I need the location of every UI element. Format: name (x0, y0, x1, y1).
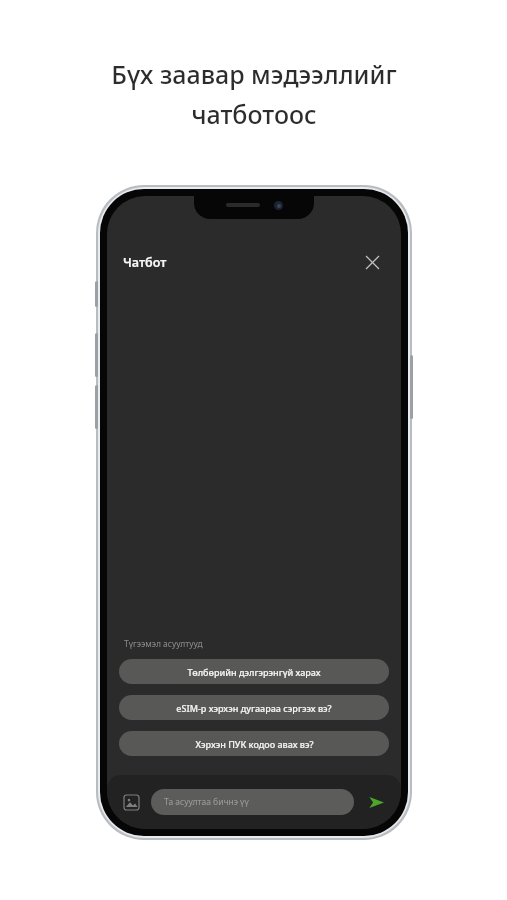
staticText: Төлбөрийн дэлгэрэнгүй харах (187, 666, 321, 678)
staticText: Та асуултаа бичнэ үү (164, 796, 249, 808)
button[interactable]: Send (363, 789, 389, 815)
button[interactable]: Attach image (119, 790, 143, 814)
button[interactable]: Хэрхэн ПУК кодоо авах вэ? (119, 731, 389, 756)
staticText: Бүх заавар мэдээллийг (111, 57, 397, 91)
staticText: Түгээмэл асуултууд (124, 638, 203, 650)
staticText: Хэрхэн ПУК кодоо авах вэ? (195, 738, 314, 750)
staticText: чатботоос (191, 97, 317, 131)
staticText: eSIM-р хэрхэн дугаараа сэргээх вэ? (176, 702, 332, 714)
button[interactable]: Close (359, 249, 385, 275)
button[interactable]: Та асуултаа бичнэ үү (151, 789, 354, 815)
staticText: Чатбот (123, 254, 167, 271)
button[interactable]: Төлбөрийн дэлгэрэнгүй харах (119, 659, 389, 684)
button[interactable]: eSIM-р хэрхэн дугаараа сэргээх вэ? (119, 695, 389, 720)
